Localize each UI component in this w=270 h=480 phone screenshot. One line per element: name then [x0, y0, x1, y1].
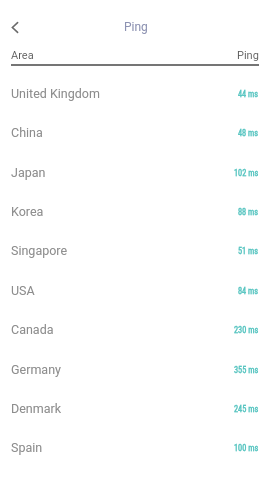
staticText: 84 ms	[238, 286, 259, 296]
staticText: Spain	[11, 440, 43, 455]
button[interactable]: Denmark	[0, 389, 270, 428]
staticText: 44 ms	[238, 89, 259, 99]
button[interactable]: Canada	[0, 310, 270, 349]
button[interactable]: Japan	[0, 153, 270, 192]
staticText: 100 ms	[234, 443, 259, 453]
staticText: 245 ms	[234, 404, 259, 414]
staticText: 51 ms	[238, 246, 259, 256]
staticText: Canada	[11, 322, 54, 337]
button[interactable]: Korea	[0, 192, 270, 231]
button[interactable]: Singapore	[0, 231, 270, 270]
button[interactable]: Back	[0, 9, 36, 45]
button[interactable]: China	[0, 113, 270, 152]
staticText: USA	[11, 283, 35, 298]
staticText: 230 ms	[234, 325, 259, 335]
staticText: Ping	[237, 49, 259, 62]
button[interactable]: Spain	[0, 428, 270, 467]
staticText: 88 ms	[238, 207, 259, 217]
staticText: Japan	[11, 165, 46, 180]
staticText: Germany	[11, 362, 61, 377]
staticText: Korea	[11, 204, 44, 219]
button[interactable]: Germany	[0, 350, 270, 389]
staticText: 48 ms	[238, 128, 259, 138]
button[interactable]: United Kingdom	[0, 74, 270, 113]
staticText: Area	[11, 49, 34, 62]
staticText: China	[11, 125, 43, 140]
staticText: Singapore	[11, 243, 68, 258]
staticText: Ping	[124, 20, 148, 34]
button[interactable]: USA	[0, 271, 270, 310]
staticText: 102 ms	[234, 168, 259, 178]
staticText: United Kingdom	[11, 86, 100, 101]
staticText: Denmark	[11, 401, 62, 416]
staticText: 355 ms	[234, 365, 259, 375]
